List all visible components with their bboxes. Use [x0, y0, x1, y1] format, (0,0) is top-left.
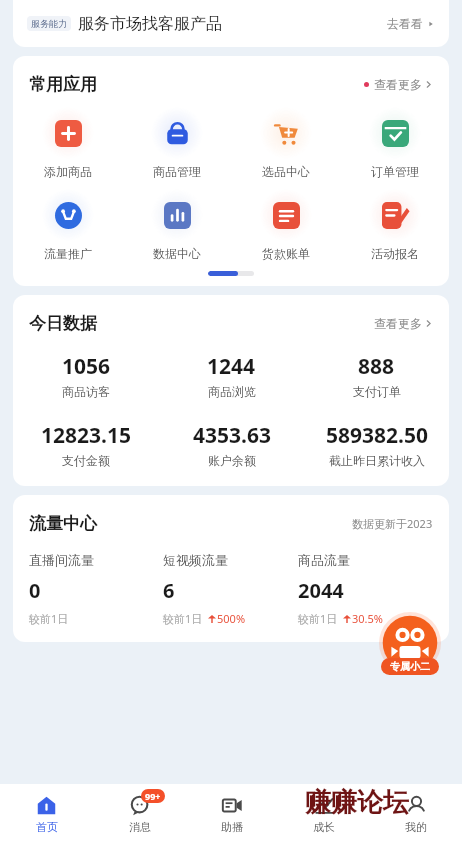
staticText: 数据更新于2023: [352, 516, 433, 531]
button[interactable]: 数据中心: [122, 189, 231, 261]
staticText: 账户余额: [208, 453, 256, 468]
staticText: 货款账单: [262, 246, 310, 261]
staticText: 截止昨日累计收入: [329, 453, 425, 468]
button[interactable]: 活动报名: [340, 189, 449, 261]
staticText: 商品浏览: [208, 384, 256, 399]
staticText: 服务能力: [31, 18, 67, 29]
staticText: 589382.50: [326, 421, 428, 450]
staticText: 今日数据: [29, 313, 97, 334]
staticText: 活动报名: [371, 246, 419, 261]
staticText: 12823.15: [41, 421, 131, 450]
staticText: 较前1日: [163, 611, 203, 626]
staticText: 服务市场找客服产品: [78, 14, 222, 34]
button[interactable]: 服务能力: [13, 0, 449, 47]
button[interactable]: 短视频流量: [163, 552, 298, 626]
staticText: 查看更多: [374, 77, 422, 92]
staticText: 添加商品: [44, 164, 92, 179]
staticText: 较前1日: [29, 611, 69, 626]
staticText: 较前1日: [298, 611, 338, 626]
staticText: 支付订单: [353, 384, 401, 399]
button[interactable]: 首页: [0, 784, 93, 842]
button[interactable]: 货款账单: [231, 189, 340, 261]
button[interactable]: 1244: [159, 352, 304, 399]
staticText: 我的: [405, 820, 427, 834]
staticText: 成长: [313, 820, 335, 834]
staticText: 短视频流量: [163, 552, 228, 568]
staticText: 商品流量: [298, 552, 350, 568]
button[interactable]: 订单管理: [340, 107, 449, 179]
button[interactable]: 流量推广: [13, 189, 122, 261]
staticText: 6: [163, 577, 175, 604]
staticText: 查看更多: [374, 316, 422, 331]
button[interactable]: 选品中心: [231, 107, 340, 179]
staticText: 直播间流量: [29, 552, 94, 568]
staticText: 商品访客: [62, 384, 110, 399]
button[interactable]: 查看更多: [374, 316, 433, 331]
staticText: 1056: [62, 352, 111, 381]
button[interactable]: 99+: [93, 784, 186, 842]
staticText: 助播: [221, 820, 243, 834]
staticText: 支付金额: [62, 453, 110, 468]
button[interactable]: 我的: [370, 784, 462, 842]
staticText: 4353.63: [193, 421, 271, 450]
button[interactable]: 4353.63: [159, 421, 304, 468]
staticText: 99+: [145, 790, 161, 802]
staticText: 订单管理: [371, 164, 419, 179]
staticText: 赚赚论坛: [305, 786, 409, 819]
staticText: 首页: [36, 820, 58, 834]
button[interactable]: 直播间流量: [29, 552, 163, 626]
staticText: 商品管理: [153, 164, 201, 179]
button[interactable]: 商品流量: [298, 552, 433, 626]
staticText: 去看看: [387, 16, 423, 31]
button[interactable]: 添加商品: [13, 107, 122, 179]
button[interactable]: 888: [304, 352, 449, 399]
staticText: 消息: [129, 820, 151, 834]
staticText: 500%: [217, 611, 246, 626]
button[interactable]: 商品管理: [122, 107, 231, 179]
staticText: 常用应用: [29, 74, 97, 95]
staticText: 数据中心: [153, 246, 201, 261]
button[interactable]: 成长: [278, 784, 370, 842]
staticText: 0: [29, 577, 41, 604]
button[interactable]: 589382.50: [304, 421, 449, 468]
staticText: 选品中心: [262, 164, 310, 179]
button[interactable]: 助播: [186, 784, 278, 842]
staticText: 888: [358, 352, 395, 381]
staticText: 2044: [298, 577, 344, 604]
staticText: 1244: [207, 352, 256, 381]
button[interactable]: 1056: [13, 352, 159, 399]
button[interactable]: 专属小二: [372, 612, 448, 688]
staticText: 流量推广: [44, 246, 92, 261]
button[interactable]: 查看更多: [364, 77, 433, 92]
staticText: 30.5%: [352, 611, 383, 626]
staticText: 流量中心: [29, 513, 97, 534]
button[interactable]: 12823.15: [13, 421, 159, 468]
staticText: 专属小二: [390, 660, 430, 673]
